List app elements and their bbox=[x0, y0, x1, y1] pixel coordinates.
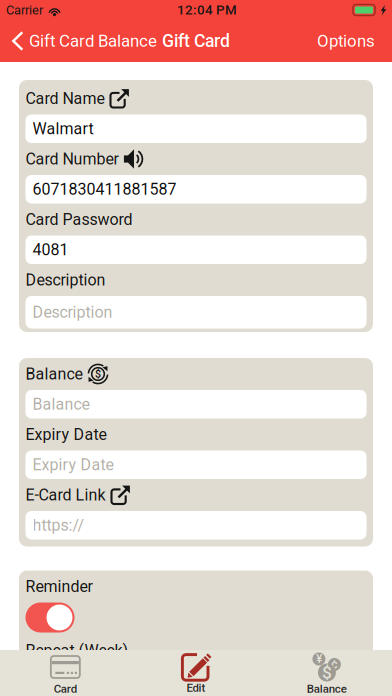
staticText: 6071830411881587 bbox=[32, 180, 176, 199]
staticText: Reminder bbox=[25, 577, 92, 596]
staticText: Gift Card bbox=[162, 31, 230, 51]
staticText: Description bbox=[32, 303, 112, 322]
staticText: Expiry Date bbox=[32, 455, 113, 474]
staticText: Options bbox=[317, 31, 375, 51]
staticText: Balance bbox=[32, 395, 89, 414]
staticText: Expiry Date bbox=[25, 425, 106, 444]
button[interactable]: Options bbox=[307, 20, 392, 62]
staticText: Card Password bbox=[25, 210, 132, 229]
staticText: Balance bbox=[307, 682, 347, 695]
staticText: Walmart bbox=[32, 119, 93, 138]
staticText: Carrier bbox=[6, 2, 43, 17]
staticText: Card Number bbox=[25, 150, 118, 168]
staticText: $ bbox=[322, 662, 332, 683]
staticText: https:// bbox=[32, 516, 84, 535]
staticText: Card Name bbox=[25, 89, 104, 108]
staticText: Weekly bbox=[32, 671, 82, 690]
staticText: Card bbox=[54, 682, 77, 695]
staticText: Description bbox=[25, 271, 105, 289]
staticText: Balance bbox=[25, 365, 82, 383]
button[interactable]: Edit bbox=[131, 650, 261, 696]
staticText: ¥ bbox=[316, 652, 322, 666]
staticText: Gift Card Balance bbox=[29, 31, 157, 51]
staticText: Edit bbox=[186, 681, 205, 695]
staticText: ¢ bbox=[331, 657, 338, 672]
staticText: Repeat (Week) bbox=[25, 641, 128, 660]
button[interactable]: ¥ bbox=[261, 650, 392, 696]
staticText: E-Card Link bbox=[25, 486, 105, 504]
staticText: 12:04 PM bbox=[177, 2, 237, 18]
staticText: $ bbox=[95, 368, 101, 380]
button[interactable]: Gift Card Balance bbox=[0, 20, 165, 62]
button[interactable]: Reminder bbox=[25, 602, 74, 632]
staticText: 4081 bbox=[32, 240, 68, 259]
button[interactable]: Card bbox=[0, 650, 131, 696]
